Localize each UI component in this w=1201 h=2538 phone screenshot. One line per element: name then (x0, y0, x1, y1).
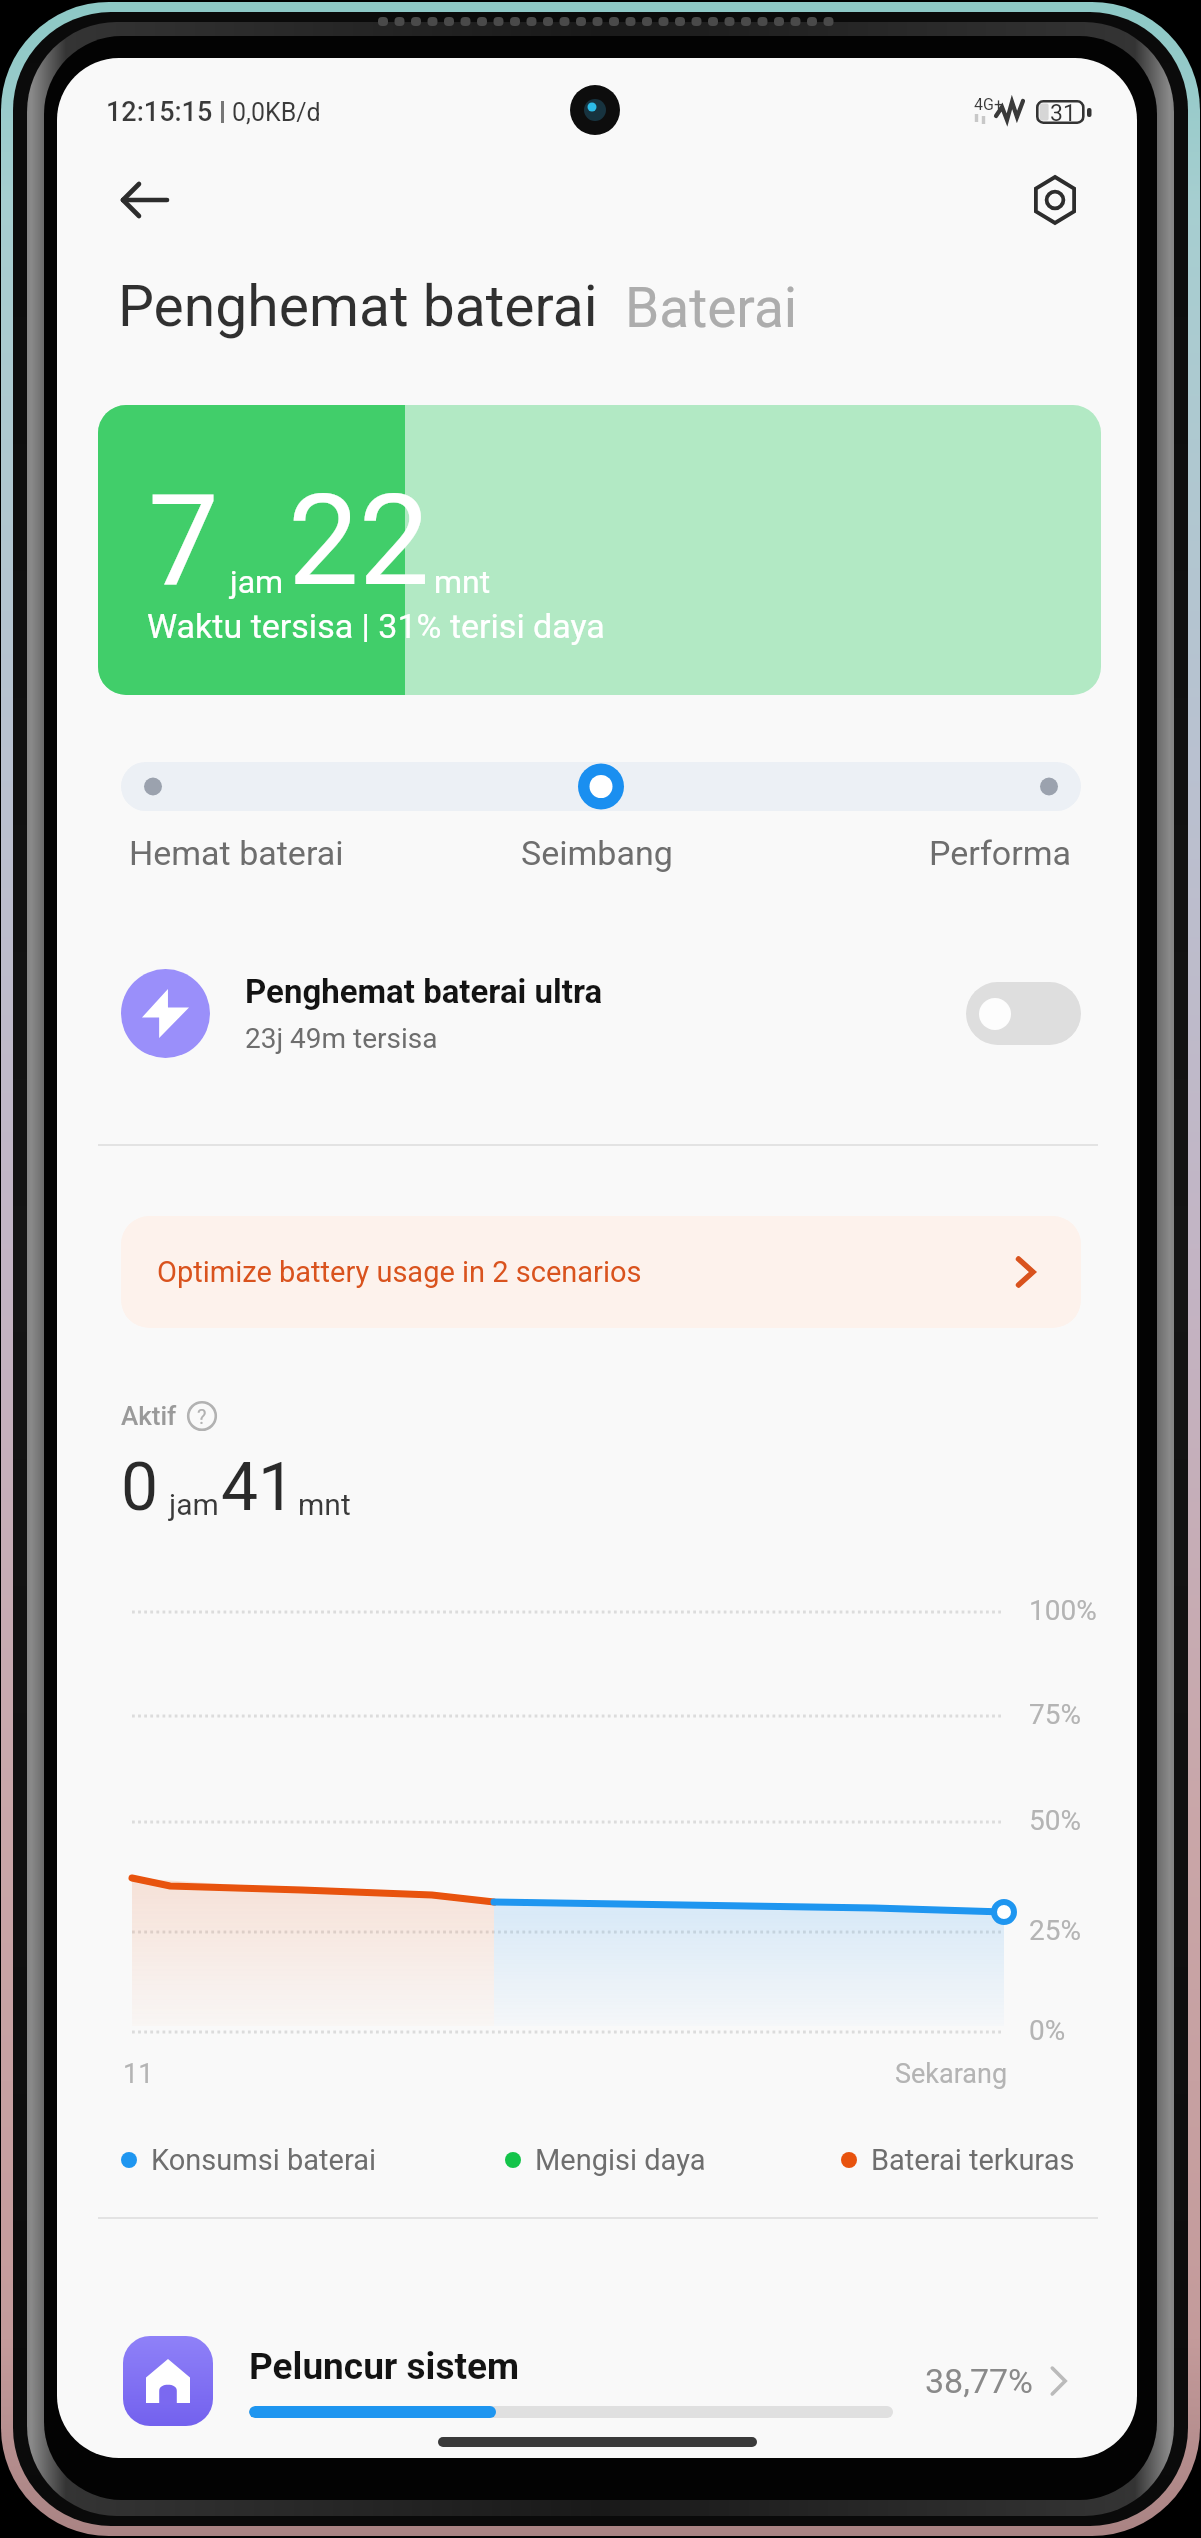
staticText: jam (169, 1487, 219, 1522)
staticText: Hemat baterai (129, 833, 344, 873)
staticText: Konsumsi baterai (151, 2143, 376, 2177)
staticText: Aktif (121, 1401, 177, 1431)
staticText: mnt (298, 1487, 351, 1522)
staticText: 75% (1029, 1698, 1081, 1731)
staticText: 25% (1029, 1914, 1081, 1947)
staticText: 0 (121, 1449, 159, 1526)
staticText: 22 (288, 467, 430, 615)
button[interactable]: Back (105, 160, 185, 240)
staticText: Sekarang (895, 2058, 1008, 2090)
staticText: Baterai terkuras (871, 2143, 1075, 2177)
staticText: mnt (434, 563, 491, 601)
button[interactable]: Optimize battery usage in 2 scenarios (121, 1216, 1081, 1328)
button[interactable]: Peluncur sistem (123, 2336, 1076, 2426)
button[interactable]: Penghemat baterai ultra (121, 958, 1081, 1068)
staticText: Penghemat baterai (118, 273, 598, 340)
staticText: 12:15:15 (106, 96, 213, 128)
staticText: 0% (1029, 2014, 1066, 2047)
staticText: 41 (221, 1449, 296, 1526)
staticText: Mengisi daya (535, 2143, 706, 2177)
staticText: Penghemat baterai ultra (245, 972, 603, 1011)
staticText: 38,77% (925, 2361, 1034, 2401)
button[interactable] (121, 762, 1081, 811)
button[interactable]: Settings (1015, 160, 1095, 240)
staticText: ? (197, 1405, 207, 1428)
staticText: 50% (1029, 1804, 1081, 1837)
staticText: Optimize battery usage in 2 scenarios (157, 1255, 642, 1289)
staticText: Waktu tersisa | 31% terisi daya (147, 606, 605, 646)
staticText: 4G+ (974, 95, 1003, 114)
staticText: jam (230, 563, 284, 601)
staticText: 11 (123, 2058, 154, 2090)
staticText: 23j 49m tersisa (245, 1022, 438, 1055)
staticText: Seimbang (521, 833, 673, 873)
staticText: 0,0KB/d (232, 98, 321, 127)
button[interactable]: Toggle ultra battery saver (966, 982, 1081, 1045)
staticText: Peluncur sistem (249, 2345, 519, 2388)
button[interactable]: 7 (98, 405, 1101, 695)
staticText: Baterai (625, 276, 798, 340)
staticText: Performa (929, 833, 1072, 873)
staticText: 31 (1050, 100, 1076, 127)
staticText: 100% (1029, 1594, 1097, 1627)
staticText: 7 (148, 467, 219, 615)
